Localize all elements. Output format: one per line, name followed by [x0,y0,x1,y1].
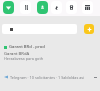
button[interactable] [2,24,77,34]
button[interactable]: App shortcut [3,1,14,14]
staticText: Garant BRdA [4,51,30,57]
button[interactable]: App shortcut [82,1,93,14]
button[interactable]: Telegram · 10 solicitantes · 1 Saldoldas… [0,73,100,81]
button[interactable]: App shortcut [20,1,31,14]
button[interactable]: Garant BRd - prod [0,43,100,63]
staticText: Telegram · 10 solicitantes · 1 Saldoldas… [10,75,85,80]
staticText: Herzabvesa para goth [4,56,44,61]
button[interactable]: App shortcut [37,1,48,14]
button[interactable]: App shortcut [51,1,62,14]
staticText: Garant BRd - prod [9,44,45,50]
button[interactable]: Add [84,24,94,34]
button[interactable]: App shortcut [66,1,77,14]
button[interactable]: More [94,76,97,79]
